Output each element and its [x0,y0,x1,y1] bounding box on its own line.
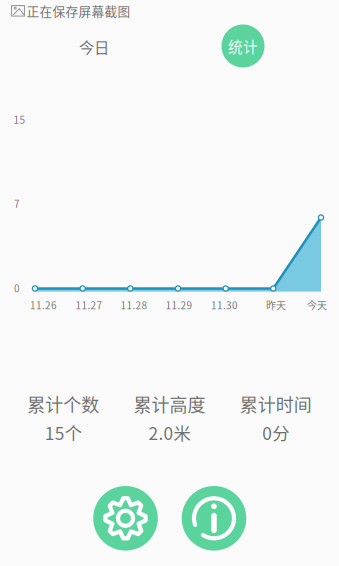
staticText: 0 [14,281,20,295]
staticText: 11.29 [165,298,192,312]
staticText: 累计高度 [133,391,205,417]
staticText: 11.28 [120,298,147,312]
staticText: 统计 [228,35,258,57]
staticText: 15个 [45,420,82,445]
staticText: 累计个数 [27,391,99,417]
staticText: 15 [13,112,25,127]
staticText: 昨天 [266,298,286,312]
staticText: 今天 [307,298,327,312]
staticText: 11.30 [211,298,238,312]
staticText: 正在保存屏幕截图 [26,2,130,20]
staticText: 7 [14,196,20,211]
staticText: 2.0米 [148,420,190,445]
staticText: 11.26 [30,298,57,312]
staticText: 今日 [79,35,109,58]
button[interactable]: Settings [93,486,158,551]
button[interactable]: Info [182,486,246,551]
staticText: 累计时间 [240,391,312,417]
staticText: 11.27 [75,298,102,312]
button[interactable]: 统计 [221,24,264,67]
staticText: 0分 [262,420,289,445]
